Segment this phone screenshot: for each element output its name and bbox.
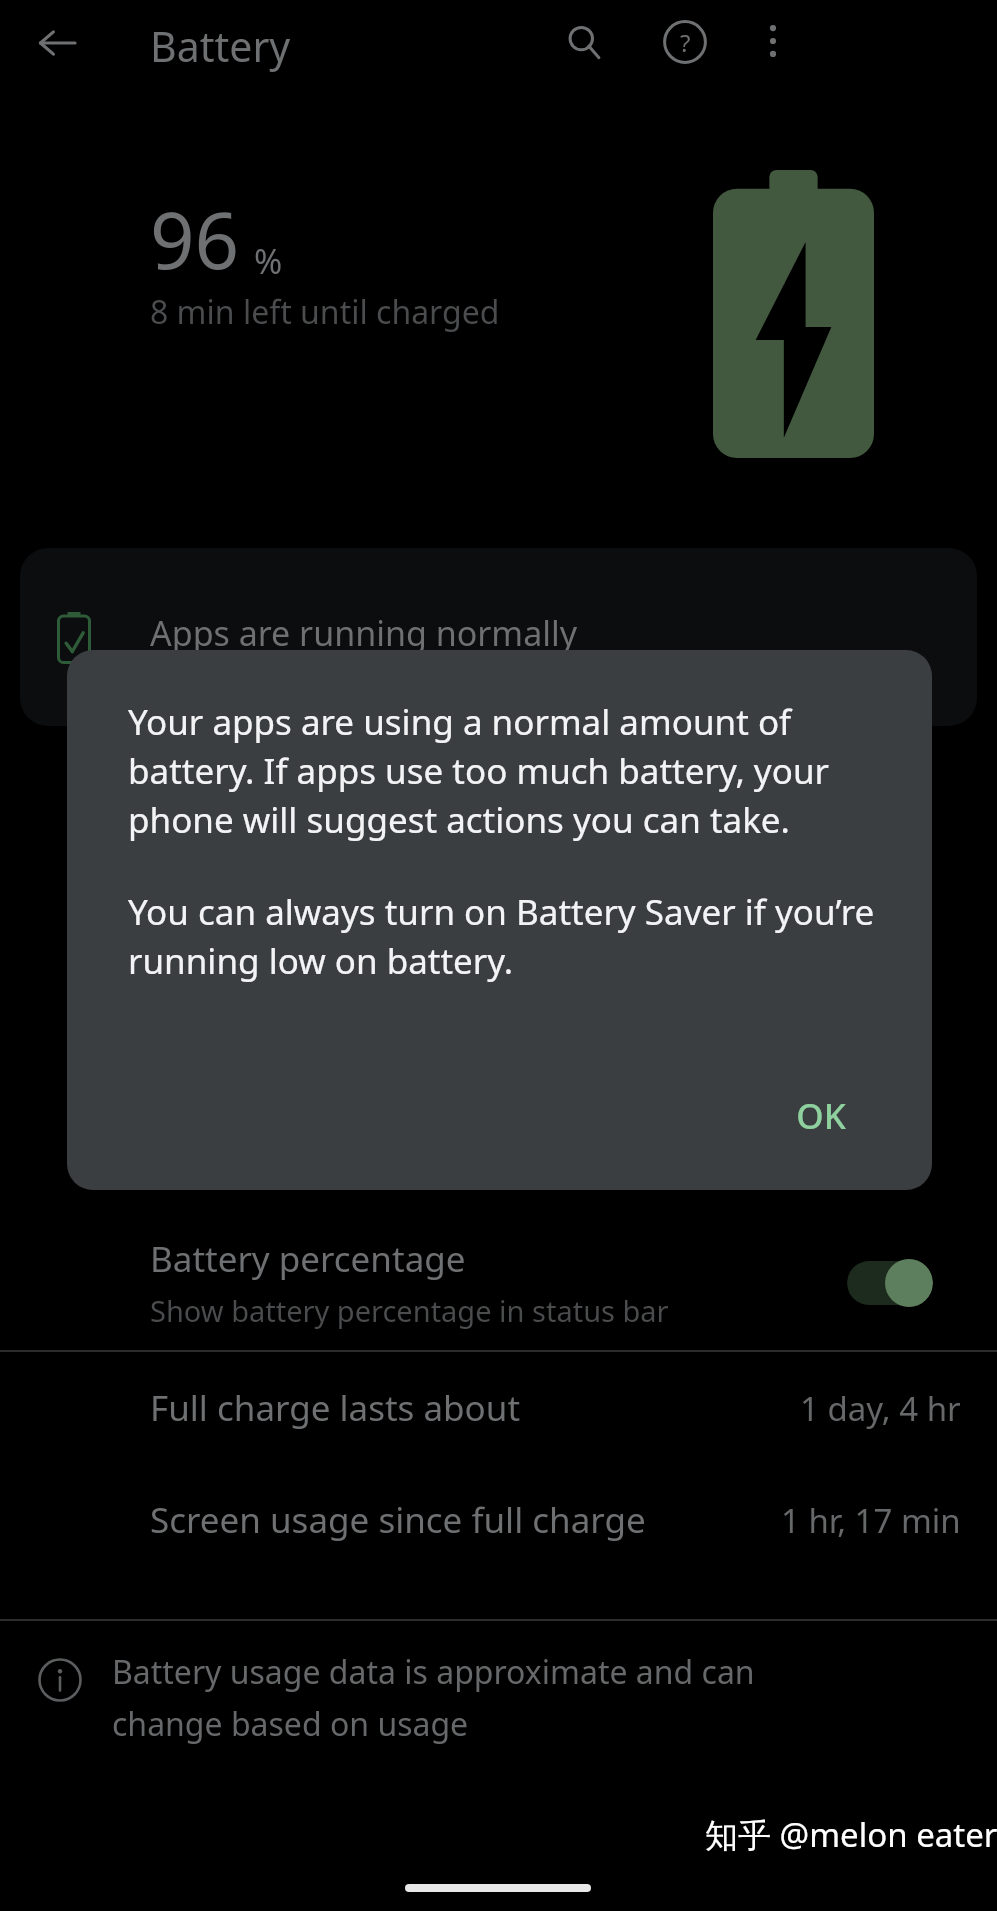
staticText: Your apps are using a normal amount of b… bbox=[128, 698, 882, 844]
staticText: % bbox=[254, 238, 283, 284]
button[interactable]: Full charge lasts about bbox=[0, 1352, 997, 1464]
staticText: You can always turn on Battery Saver if … bbox=[128, 888, 882, 985]
button[interactable]: Back bbox=[26, 12, 88, 74]
staticText: 96 bbox=[150, 186, 240, 292]
button[interactable]: Screen usage since full charge bbox=[0, 1464, 997, 1576]
button[interactable]: Battery percentage bbox=[0, 1215, 997, 1350]
button[interactable]: Help bbox=[653, 10, 717, 74]
staticText: OK bbox=[796, 1092, 846, 1140]
staticText: ? bbox=[680, 26, 691, 59]
staticText: Show battery percentage in status bar bbox=[150, 1291, 669, 1330]
staticText: 知乎 @melon eater bbox=[705, 1812, 997, 1857]
staticText: 8 min left until charged bbox=[150, 290, 500, 334]
button[interactable]: Apps are running normally bbox=[20, 548, 977, 726]
button[interactable]: More options bbox=[742, 10, 804, 72]
button[interactable]: OK bbox=[774, 1082, 868, 1150]
staticText: Screen usage since full charge bbox=[150, 1496, 646, 1544]
staticText: Battery percentage bbox=[150, 1235, 466, 1283]
button[interactable]: Battery percentage toggle bbox=[847, 1258, 933, 1308]
staticText: 1 hr, 17 min bbox=[781, 1498, 961, 1543]
button[interactable]: Search bbox=[552, 10, 616, 74]
staticText: 1 day, 4 hr bbox=[800, 1386, 961, 1431]
staticText: Battery bbox=[150, 18, 291, 74]
staticText: change based on usage bbox=[112, 1702, 469, 1746]
staticText: Battery usage data is approximate and ca… bbox=[112, 1650, 755, 1694]
staticText: Full charge lasts about bbox=[150, 1384, 521, 1432]
staticText: Apps are running normally bbox=[150, 610, 578, 656]
